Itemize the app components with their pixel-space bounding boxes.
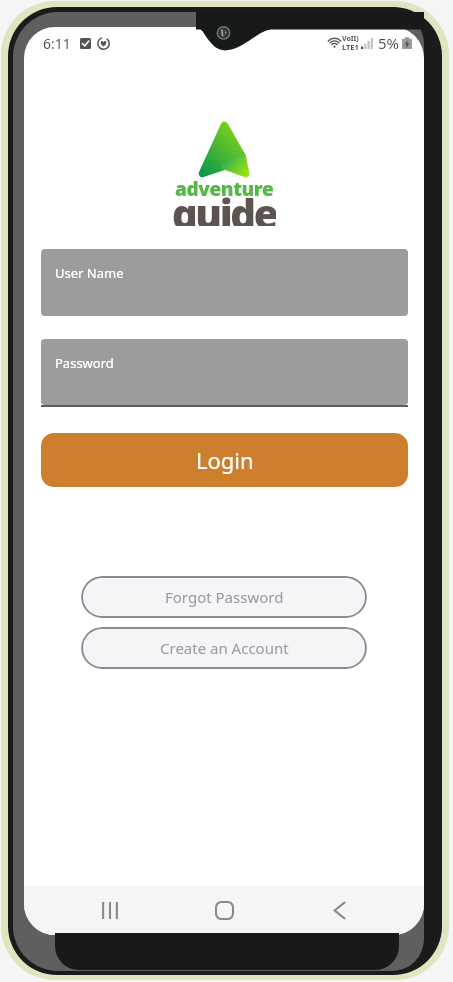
staticText: Forgot Password — [165, 587, 284, 607]
staticText: Create an Account — [160, 638, 289, 658]
button[interactable]: Recent apps — [77, 886, 143, 935]
staticText: User Name — [55, 264, 124, 282]
staticText: guide — [172, 186, 276, 226]
button[interactable]: Login — [41, 433, 408, 487]
button[interactable]: Forgot Password — [81, 576, 367, 618]
staticText: 5% — [378, 33, 400, 53]
staticText: 6:11 — [43, 34, 71, 53]
staticText: LTE1 — [342, 42, 359, 52]
staticText: Password — [55, 354, 114, 372]
button[interactable]: Back — [306, 886, 372, 935]
button[interactable]: Home — [191, 886, 257, 935]
button[interactable]: Create an Account — [81, 627, 367, 669]
staticText: adventure — [175, 176, 274, 196]
button[interactable]: User Name — [41, 249, 408, 316]
staticText: Login — [196, 445, 254, 475]
button[interactable]: Password — [41, 339, 408, 407]
staticText: VoII) — [342, 34, 359, 44]
